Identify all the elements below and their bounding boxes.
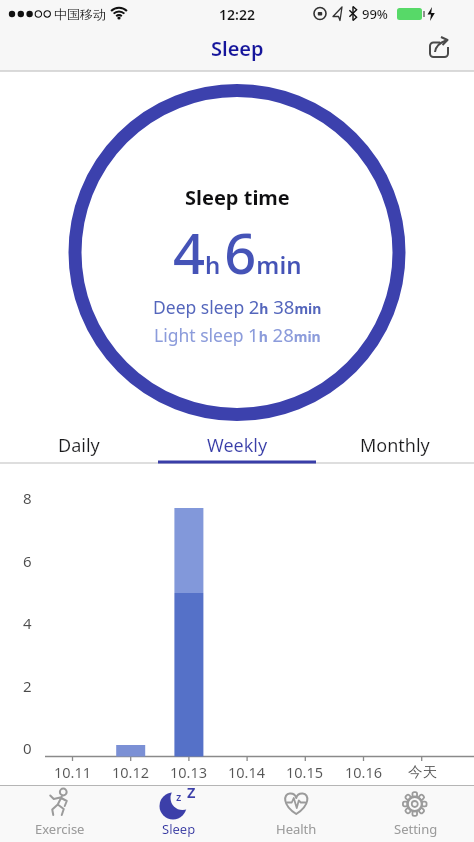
staticText: Health — [276, 820, 317, 838]
staticText: 99% — [362, 5, 388, 23]
staticText: Monthly — [360, 433, 430, 458]
button[interactable]: Monthly — [316, 428, 474, 463]
button[interactable]: Daily — [0, 428, 158, 463]
staticText: z — [176, 789, 182, 803]
staticText: Light sleep 1h 28min — [154, 322, 321, 347]
staticText: 8 — [23, 488, 32, 508]
staticText: 10.15 — [286, 762, 324, 782]
staticText: 今天 — [408, 763, 437, 781]
button[interactable]: Setting — [356, 786, 474, 842]
staticText: 10.13 — [170, 762, 208, 782]
staticText: Daily — [58, 433, 100, 458]
staticText: 10.14 — [228, 762, 266, 782]
staticText: 6 — [23, 551, 32, 571]
staticText: 4h 6min — [173, 214, 302, 290]
staticText: 0 — [23, 738, 32, 758]
staticText: 中国移动 — [54, 6, 106, 22]
staticText: Weekly — [207, 433, 268, 458]
staticText: Sleep — [162, 820, 196, 838]
button[interactable] — [420, 32, 464, 66]
staticText: Sleep time — [185, 184, 290, 211]
button[interactable]: Health — [237, 786, 356, 842]
staticText: Setting — [394, 820, 438, 838]
button[interactable]: Exercise — [0, 786, 119, 842]
staticText: 10.11 — [54, 762, 92, 782]
staticText: Exercise — [35, 820, 85, 838]
staticText: 4 — [23, 613, 32, 633]
staticText: 2 — [23, 676, 32, 696]
staticText: Deep sleep 2h 38min — [153, 294, 322, 319]
button[interactable]: Sleep — [119, 786, 238, 842]
staticText: Sleep — [211, 35, 264, 62]
staticText: 10.12 — [112, 762, 150, 782]
staticText: 10.16 — [345, 762, 383, 782]
button[interactable]: Weekly — [158, 428, 316, 463]
staticText: 12:22 — [219, 5, 255, 23]
staticText: Z — [187, 782, 196, 798]
